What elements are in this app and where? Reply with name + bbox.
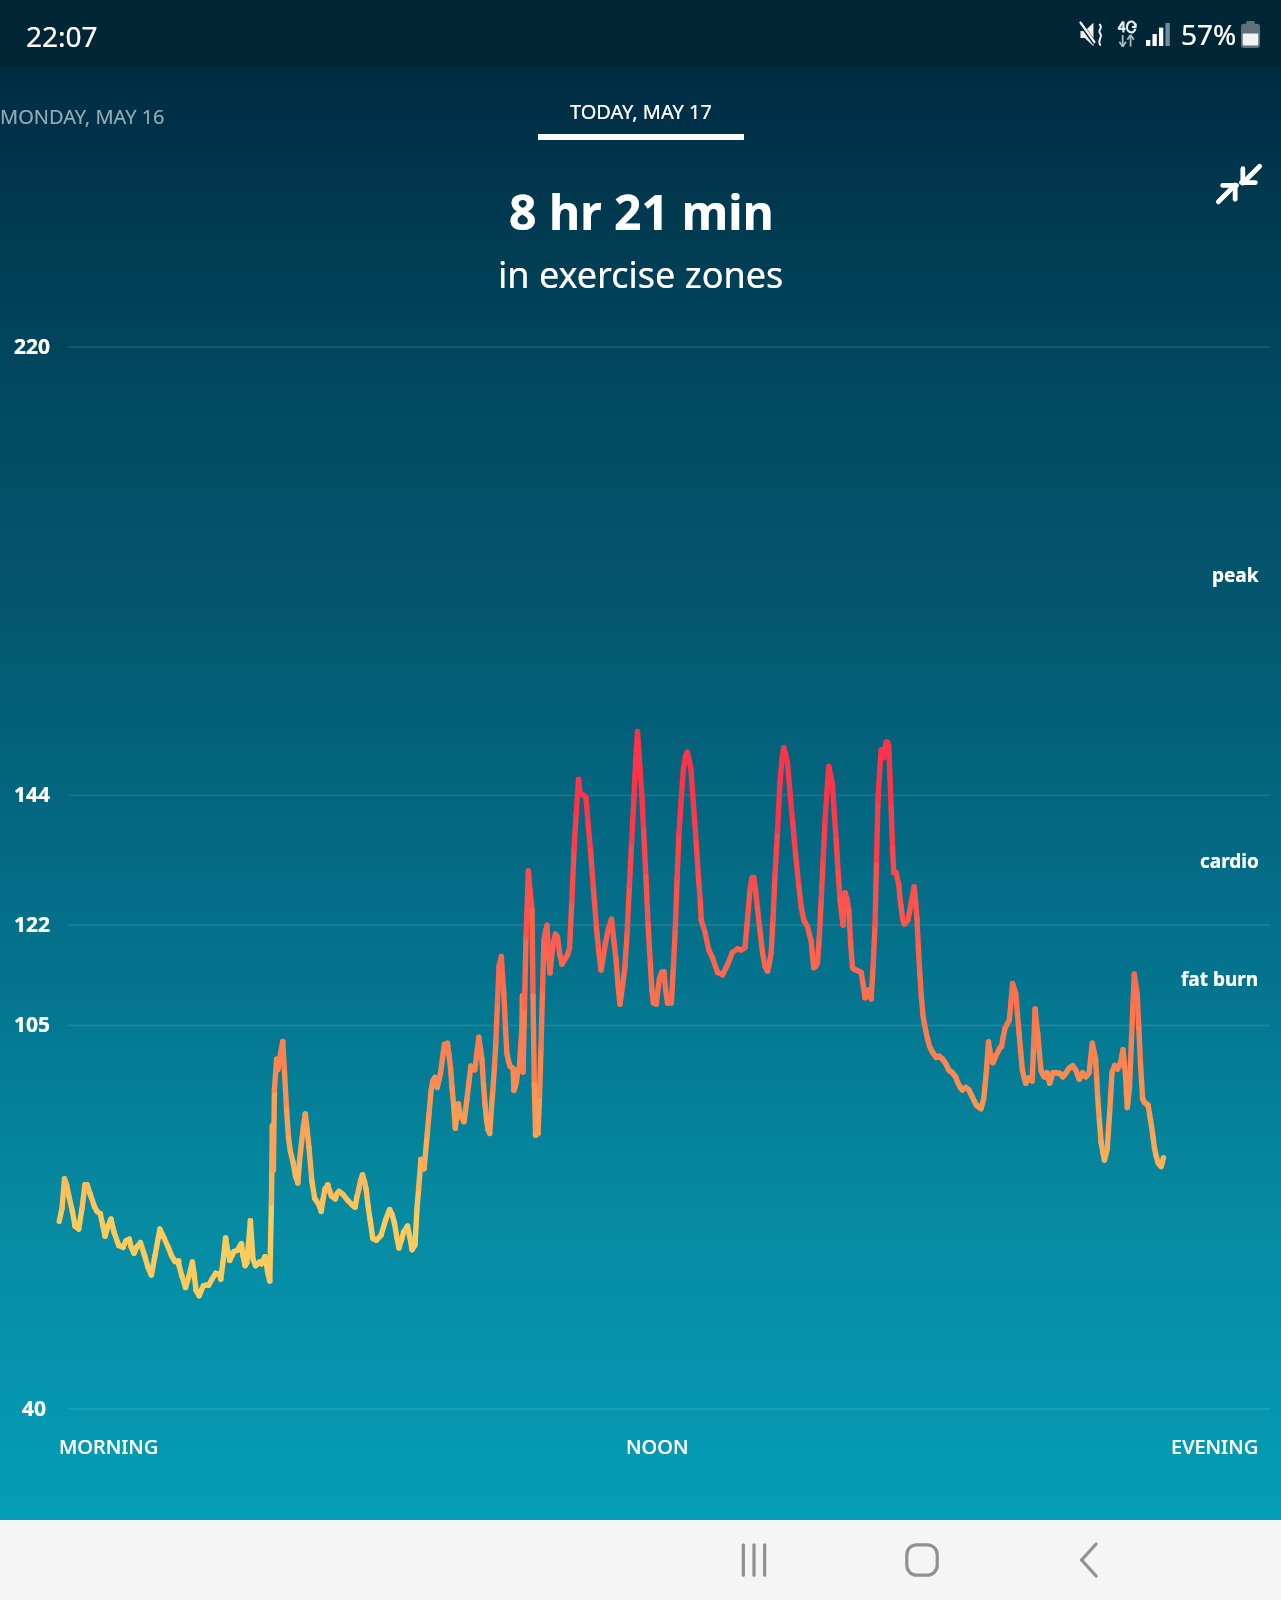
button[interactable]: Exit full screen bbox=[1215, 160, 1263, 208]
staticText: 220 bbox=[14, 332, 51, 361]
staticText: 122 bbox=[14, 910, 51, 939]
staticText: MORNING bbox=[59, 1433, 159, 1460]
staticText: MONDAY, MAY 16 bbox=[0, 103, 165, 130]
staticText: fat burn bbox=[1181, 966, 1259, 992]
button[interactable]: Home bbox=[884, 1522, 960, 1598]
staticText: 22:07 bbox=[26, 17, 98, 55]
staticText: cardio bbox=[1200, 848, 1259, 874]
staticText: 57% bbox=[1181, 15, 1237, 53]
button[interactable]: Back bbox=[1052, 1522, 1128, 1598]
staticText: NOON bbox=[626, 1433, 689, 1460]
staticText: TODAY, MAY 17 bbox=[570, 98, 712, 125]
staticText: 105 bbox=[14, 1010, 51, 1039]
staticText: 40 bbox=[22, 1394, 47, 1423]
staticText: EVENING bbox=[1171, 1433, 1259, 1460]
staticText: 8 hr 21 min bbox=[509, 179, 774, 244]
button[interactable]: TODAY, MAY 17 bbox=[514, 92, 768, 146]
button[interactable]: MONDAY, MAY 16 bbox=[0, 98, 173, 135]
staticText: peak bbox=[1212, 562, 1259, 588]
staticText: 144 bbox=[14, 780, 51, 809]
button[interactable]: Recent apps bbox=[716, 1522, 792, 1598]
staticText: in exercise zones bbox=[498, 250, 784, 299]
